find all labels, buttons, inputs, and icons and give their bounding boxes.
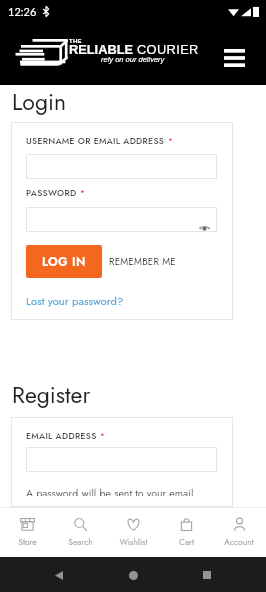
- button[interactable]: Home: [118, 560, 148, 590]
- staticText: 12:26: [8, 5, 37, 18]
- staticText: *: [97, 430, 105, 443]
- button[interactable]: Wishlist: [107, 512, 159, 553]
- staticText: Login: [12, 85, 67, 118]
- staticText: Search: [68, 536, 93, 548]
- staticText: A password will be sent to your email: [26, 486, 194, 496]
- button[interactable]: [26, 154, 217, 179]
- staticText: Wishlist: [119, 536, 148, 548]
- button[interactable]: Back: [44, 560, 74, 590]
- staticText: RELIABLE: [69, 42, 133, 56]
- staticText: Register: [12, 378, 91, 411]
- staticText: USERNAME OR EMAIL ADDRESS: [26, 135, 165, 148]
- staticText: Account: [224, 536, 254, 548]
- staticText: rely on our delivery: [101, 55, 165, 63]
- button[interactable]: [26, 447, 217, 472]
- staticText: THE: [69, 38, 82, 45]
- button[interactable]: Cart: [160, 512, 212, 553]
- staticText: EMAIL ADDRESS: [26, 430, 97, 443]
- button[interactable]: Lost your password?: [26, 293, 124, 309]
- button[interactable]: Store: [1, 512, 53, 553]
- staticText: PASSWORD: [26, 187, 77, 200]
- button[interactable]: LOG IN: [26, 245, 102, 278]
- button[interactable]: Search: [54, 512, 106, 553]
- button[interactable]: Recents: [192, 560, 222, 590]
- button[interactable]: Account: [213, 512, 265, 553]
- staticText: LOG IN: [42, 253, 86, 270]
- staticText: *: [165, 135, 173, 148]
- button[interactable]: Menu: [217, 44, 251, 72]
- staticText: Cart: [179, 536, 194, 548]
- staticText: Store: [18, 536, 37, 548]
- staticText: COURIER: [133, 42, 199, 56]
- staticText: *: [77, 187, 85, 200]
- button[interactable]: REMEMBER ME: [109, 255, 176, 269]
- button[interactable]: [26, 207, 217, 232]
